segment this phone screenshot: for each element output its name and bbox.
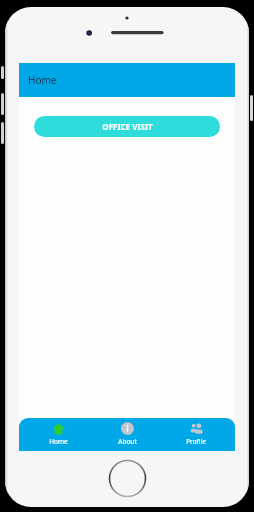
button[interactable]: Home bbox=[19, 63, 235, 97]
button[interactable]: Profile bbox=[166, 418, 226, 451]
staticText: Home bbox=[49, 437, 68, 446]
button[interactable]: About bbox=[97, 418, 157, 451]
other: Profile bbox=[190, 422, 203, 435]
staticText: Home bbox=[28, 73, 57, 87]
staticText: About bbox=[118, 437, 137, 446]
staticText: OFFICE VISIT bbox=[102, 121, 153, 132]
staticText: Profile bbox=[186, 437, 206, 446]
other: About bbox=[121, 422, 134, 435]
button[interactable]: OFFICE VISIT bbox=[34, 116, 220, 137]
other: Home bbox=[52, 422, 65, 435]
button[interactable]: Home bbox=[28, 418, 88, 451]
